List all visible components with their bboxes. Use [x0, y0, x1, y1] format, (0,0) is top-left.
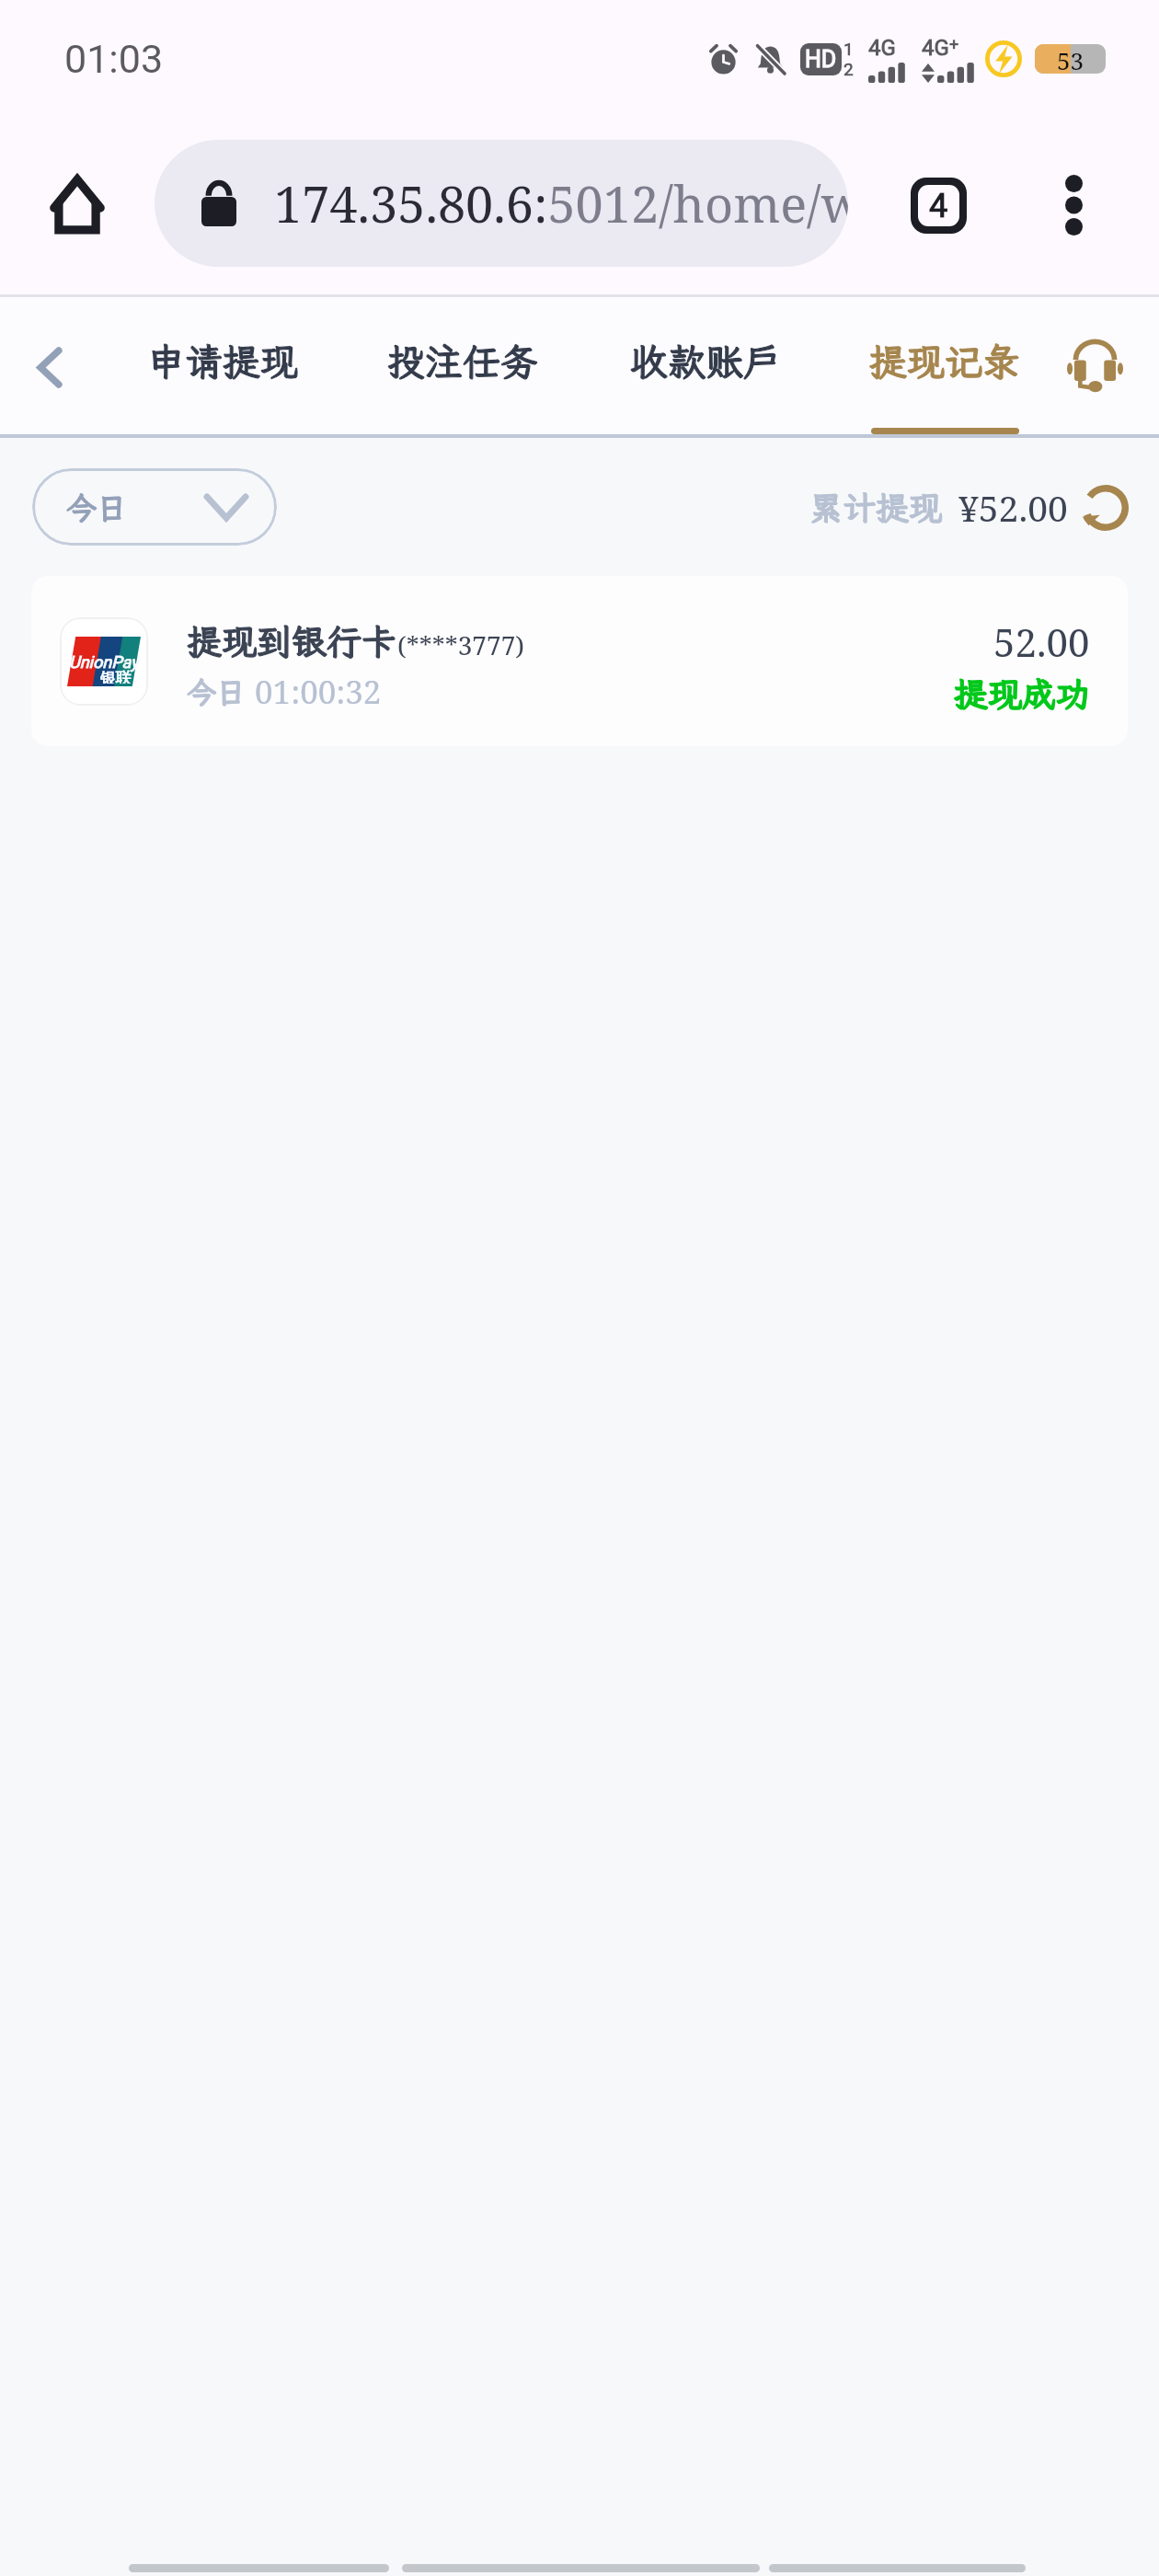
staticText: 收款账户 — [630, 337, 781, 386]
staticText: 52.00 — [993, 615, 1090, 668]
button[interactable]: UnionPay — [31, 576, 1128, 746]
staticText: 4G — [868, 35, 896, 61]
button[interactable]: 申请提现 — [140, 297, 305, 434]
staticText: 投注任务 — [387, 337, 538, 386]
staticText: 提现成功 — [954, 672, 1090, 717]
staticText: 申请提现 — [147, 337, 298, 386]
staticText: HD — [805, 46, 837, 73]
staticText: 累计提现 — [809, 486, 943, 529]
staticText: 银联 — [100, 669, 132, 684]
staticText: 174.35.80.6:5012/home/withdraw — [274, 169, 848, 237]
staticText: 53 — [1035, 44, 1106, 74]
staticText: 收款账户 — [630, 337, 781, 386]
button[interactable]: 投注任务 — [380, 297, 545, 434]
staticText: 01:03 — [64, 36, 164, 82]
staticText: 1 — [843, 39, 854, 59]
staticText: ¥52.00 — [958, 483, 1068, 532]
staticText: 4 — [929, 187, 948, 225]
staticText: 今日 — [66, 488, 127, 527]
button[interactable]: Back — [769, 2541, 1026, 2572]
staticText: + — [949, 35, 959, 54]
staticText: 提现记录 — [869, 337, 1020, 386]
button[interactable]: Refresh — [1081, 483, 1130, 532]
staticText: 累计提现 — [809, 486, 943, 529]
staticText: 提现成功 — [954, 672, 1090, 717]
button[interactable]: 今日 — [32, 468, 277, 546]
button[interactable]: Recent apps — [129, 2541, 389, 2572]
button[interactable]: Back — [15, 332, 85, 402]
button[interactable]: Tabs — [897, 164, 980, 247]
staticText: 申请提现 — [147, 337, 298, 386]
staticText: (****3777) — [397, 627, 524, 662]
staticText: UnionPay — [69, 652, 139, 672]
button[interactable]: 提现记录 — [862, 297, 1027, 434]
button[interactable]: More options — [1032, 164, 1115, 247]
staticText: 提现记录 — [869, 337, 1020, 386]
staticText: 今日 — [187, 673, 247, 711]
staticText: 提现到银行卡 — [187, 618, 397, 664]
staticText: 今日 — [66, 488, 127, 527]
button[interactable]: 174.35.80.6:5012/home/withdraw — [155, 140, 848, 267]
button[interactable]: Home — [40, 167, 114, 243]
button[interactable]: Customer service — [1058, 329, 1131, 399]
staticText: 投注任务 — [387, 337, 538, 386]
staticText: 2 — [843, 59, 854, 79]
staticText: 今日 — [187, 673, 247, 711]
button[interactable]: 收款账户 — [623, 297, 788, 434]
staticText: 01:00:32 — [255, 670, 382, 714]
staticText: 4G — [922, 35, 949, 61]
staticText: 提现到银行卡 — [187, 618, 397, 664]
button[interactable]: Home — [402, 2541, 760, 2572]
